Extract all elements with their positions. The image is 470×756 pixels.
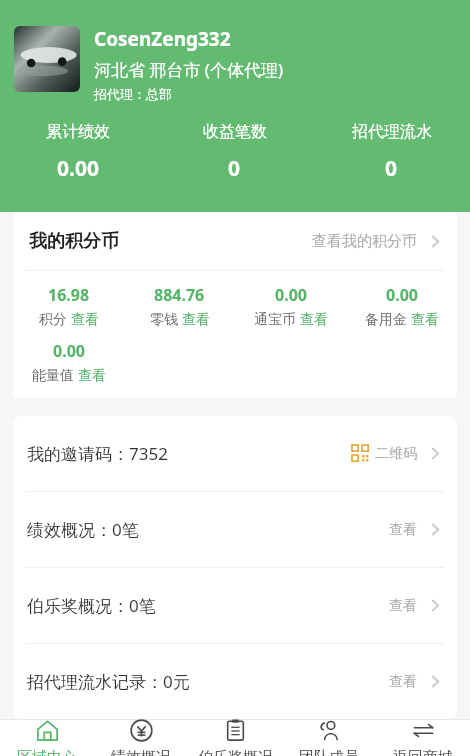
staticText: 招代理流水: [352, 122, 432, 142]
staticText: 通宝币: [254, 311, 296, 329]
button[interactable]: 绩效概况：0笔: [13, 492, 457, 567]
staticText: 零钱: [150, 311, 178, 329]
staticText: 伯乐奖概况: [198, 748, 273, 756]
button[interactable]: 绩效概况: [94, 719, 188, 756]
staticText: 查看: [300, 311, 328, 329]
staticText: 0.00: [275, 284, 307, 306]
button[interactable]: 招代理流水: [313, 122, 470, 183]
staticText: 查看: [71, 311, 99, 329]
staticText: 收益笔数: [203, 122, 267, 142]
button[interactable]: 我的邀请码：7352: [13, 416, 457, 491]
staticText: 查看: [411, 311, 439, 329]
button[interactable]: 区域中心: [0, 719, 94, 756]
button[interactable]: 累计绩效: [0, 122, 156, 183]
staticText: 积分: [39, 311, 67, 329]
staticText: 0.00: [57, 154, 99, 183]
staticText: 返回商城: [393, 748, 453, 756]
button[interactable]: 查看: [182, 311, 210, 329]
staticText: 884.76: [154, 284, 205, 306]
staticText: 绩效概况: [111, 748, 171, 756]
staticText: 查看: [389, 597, 417, 615]
button[interactable]: 我的积分币: [13, 212, 457, 270]
staticText: 招代理：总部: [94, 86, 172, 102]
staticText: 查看: [182, 311, 210, 329]
button[interactable]: 收益笔数: [156, 122, 313, 183]
staticText: 0.00: [386, 284, 418, 306]
button[interactable]: 查看: [78, 367, 106, 385]
staticText: 查看: [389, 521, 417, 539]
staticText: 河北省 邢台市 (个体代理): [94, 58, 284, 81]
button[interactable]: 伯乐奖概况：0笔: [13, 568, 457, 643]
staticText: 我的积分币: [29, 230, 119, 253]
staticText: 团队成员: [299, 748, 359, 756]
staticText: 查看我的积分币: [312, 232, 417, 251]
button[interactable]: 团队成员: [282, 719, 376, 756]
staticText: 绩效概况：0笔: [27, 518, 139, 541]
staticText: 0: [385, 154, 398, 183]
button[interactable]: 返回商城: [376, 719, 470, 756]
button[interactable]: 招代理流水记录：0元: [13, 644, 457, 719]
staticText: 16.98: [48, 284, 90, 306]
staticText: 招代理流水记录：0元: [27, 670, 190, 693]
button[interactable]: Avatar: [14, 26, 80, 92]
button[interactable]: 查看: [71, 311, 99, 329]
button[interactable]: 查看: [300, 311, 328, 329]
staticText: 查看: [78, 367, 106, 385]
staticText: CosenZeng332: [94, 26, 231, 52]
staticText: 能量值: [32, 367, 74, 385]
staticText: 区域中心: [17, 748, 77, 756]
staticText: 我的邀请码：7352: [27, 442, 168, 465]
staticText: 累计绩效: [46, 122, 110, 142]
staticText: 查看: [389, 673, 417, 691]
button[interactable]: 伯乐奖概况: [188, 719, 282, 756]
staticText: 备用金: [365, 311, 407, 329]
button[interactable]: 查看: [411, 311, 439, 329]
staticText: 0.00: [53, 340, 85, 362]
staticText: 伯乐奖概况：0笔: [27, 594, 156, 617]
staticText: 0: [228, 154, 241, 183]
staticText: 二维码: [375, 445, 417, 463]
